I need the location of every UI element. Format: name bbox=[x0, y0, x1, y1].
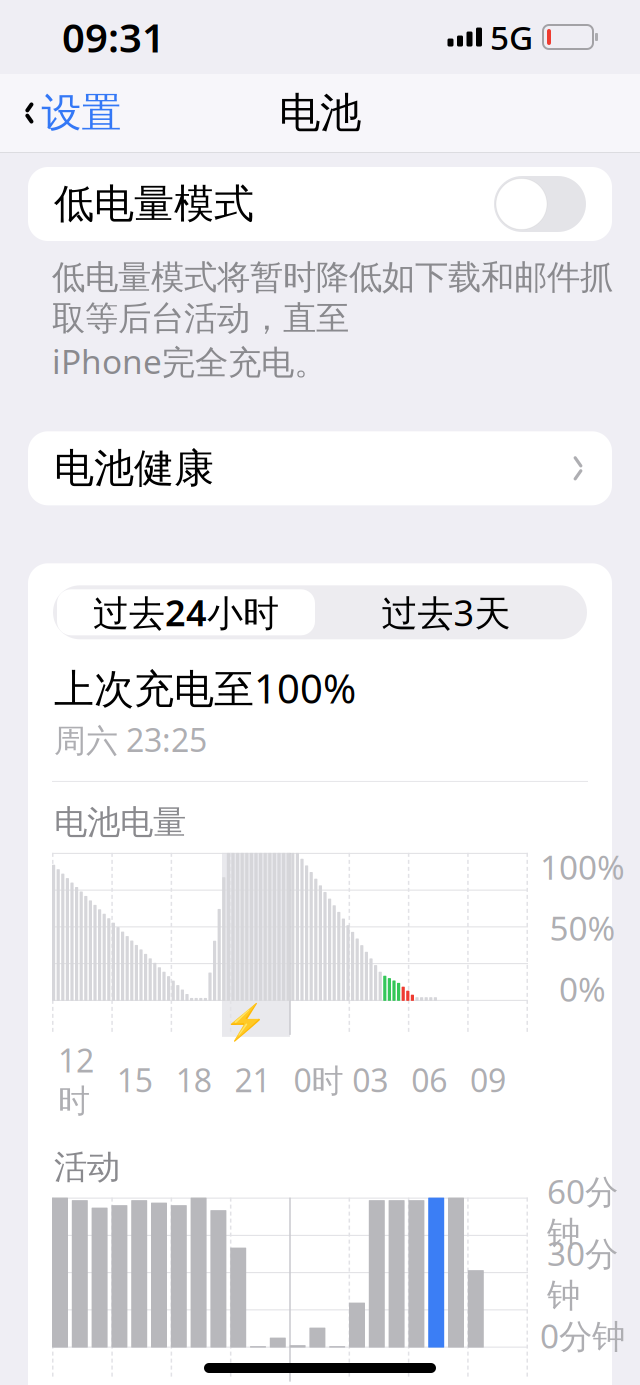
staticText: 18 bbox=[176, 1058, 212, 1101]
staticText: 0% bbox=[559, 967, 606, 1011]
button[interactable]: 过去3天 bbox=[315, 589, 577, 635]
staticText: 过去24小时 bbox=[93, 588, 279, 636]
staticText: 60分钟 bbox=[547, 1169, 618, 1254]
staticText: 15 bbox=[117, 1058, 153, 1101]
staticText: 21 bbox=[235, 1058, 271, 1101]
staticText: 活动 bbox=[54, 1147, 120, 1188]
staticText: 0分钟 bbox=[540, 1313, 625, 1358]
staticText: 50% bbox=[549, 906, 615, 950]
staticText: 电池健康 bbox=[54, 444, 214, 493]
button[interactable]: 低电量模式 bbox=[28, 167, 612, 241]
staticText: 06 bbox=[411, 1058, 447, 1101]
staticText: 0时 bbox=[293, 1058, 343, 1101]
staticText: 低电量模式 bbox=[54, 179, 254, 228]
button[interactable]: 电池健康 bbox=[28, 431, 612, 505]
staticText: 设置 bbox=[41, 88, 121, 137]
button[interactable]: 设置 bbox=[0, 78, 121, 147]
staticText: 上次充电至100% bbox=[54, 661, 356, 714]
staticText: 09:31 bbox=[62, 10, 165, 63]
staticText: 100% bbox=[540, 845, 625, 889]
staticText: 过去3天 bbox=[381, 588, 510, 636]
staticText: 30分钟 bbox=[547, 1231, 618, 1316]
staticText: 03 bbox=[352, 1058, 388, 1101]
staticText: 电池电量 bbox=[54, 802, 186, 843]
staticText: 低电量模式将暂时降低如下载和邮件抓取等后台活动，直至 iPhone完全充电。 bbox=[52, 257, 613, 383]
staticText: 周六 23:25 bbox=[54, 718, 207, 761]
staticText: 5G bbox=[490, 15, 533, 59]
staticText: 12时 bbox=[58, 1039, 94, 1121]
staticText: 电池 bbox=[279, 88, 361, 138]
staticText: ⚡ bbox=[223, 1002, 266, 1042]
button[interactable]: 过去24小时 bbox=[57, 589, 315, 635]
staticText: 09 bbox=[470, 1058, 506, 1101]
